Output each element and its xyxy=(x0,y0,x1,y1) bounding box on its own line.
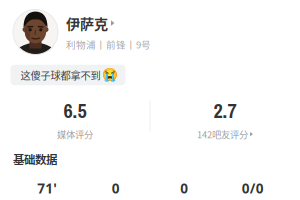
staticText: 2.7 xyxy=(213,97,236,124)
staticText: 😭 xyxy=(101,68,117,82)
staticText: 71' xyxy=(37,179,57,197)
staticText: 这傻子球都拿不到 xyxy=(20,68,100,82)
staticText: 0 xyxy=(112,179,120,197)
staticText: 142吧友评分 xyxy=(197,127,248,141)
staticText: 0/0 xyxy=(242,179,264,197)
button[interactable]: 2.7 xyxy=(170,98,280,140)
staticText: 媒体评分 xyxy=(57,127,93,141)
staticText: 利物浦丨前锋丨9号 xyxy=(66,37,151,51)
button[interactable]: 伊萨克 xyxy=(13,9,243,55)
staticText: 0 xyxy=(180,179,188,197)
staticText: 伊萨克 xyxy=(66,13,108,33)
staticText: 基础数据 xyxy=(13,151,57,167)
staticText: 6.5 xyxy=(63,97,86,124)
